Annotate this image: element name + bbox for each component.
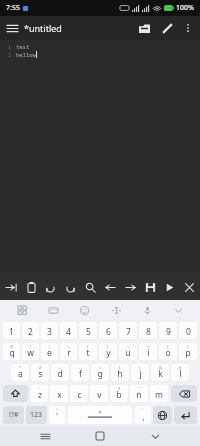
- staticText: s: [38, 368, 43, 380]
- button[interactable]: °: [49, 406, 65, 424]
- button[interactable]: Open file: [132, 16, 156, 40]
- staticText: a: [18, 368, 23, 380]
- button[interactable]: &: [151, 364, 169, 381]
- button[interactable]: Search: [81, 278, 99, 296]
- button[interactable]: Undo: [41, 278, 59, 296]
- button[interactable]: $: [110, 385, 128, 402]
- button[interactable]: 8: [139, 322, 157, 339]
- button[interactable]: -: [71, 364, 89, 381]
- button[interactable]: 5: [79, 322, 97, 339]
- button[interactable]: #: [31, 364, 49, 381]
- button[interactable]: `: [50, 385, 68, 402]
- button[interactable]: Enter: [174, 406, 197, 424]
- button[interactable]: Clipboard: [14, 302, 30, 318]
- staticText: n: [136, 389, 142, 401]
- button[interactable]: ": [130, 385, 148, 402]
- staticText: =: [67, 344, 70, 349]
- button[interactable]: ·: [70, 385, 88, 402]
- staticText: p: [185, 347, 191, 359]
- staticText: 2: [8, 51, 12, 58]
- staticText: °: [56, 407, 58, 412]
- button[interactable]: 1: [3, 322, 20, 339]
- button[interactable]: Change language: [153, 406, 172, 424]
- staticText: !?#: [9, 410, 19, 420]
- staticText: o: [165, 347, 171, 359]
- staticText: 8: [146, 326, 151, 338]
- button[interactable]: [: [79, 343, 97, 360]
- button[interactable]: _: [90, 385, 108, 402]
- button[interactable]: }: [179, 343, 197, 360]
- button[interactable]: Space: [68, 406, 132, 424]
- button[interactable]: Close: [180, 278, 198, 296]
- button[interactable]: 3: [41, 322, 58, 339]
- staticText: ': [56, 411, 58, 423]
- button[interactable]: Keyboard settings: [45, 302, 61, 318]
- staticText: <: [127, 344, 130, 349]
- button[interactable]: Menu: [0, 16, 24, 40]
- button[interactable]: ~: [31, 385, 48, 402]
- button[interactable]: +: [51, 364, 69, 381]
- button[interactable]: >: [139, 343, 157, 360]
- button[interactable]: (: [111, 364, 129, 381]
- button[interactable]: =: [91, 364, 109, 381]
- button[interactable]: <: [119, 343, 137, 360]
- button[interactable]: Run: [160, 278, 178, 296]
- button[interactable]: |: [41, 343, 58, 360]
- staticText: hellow: [16, 51, 36, 58]
- button[interactable]: Voice input: [139, 302, 155, 318]
- staticText: 123: [30, 410, 43, 420]
- button[interactable]: ': [150, 385, 168, 402]
- button[interactable]: !?#: [3, 406, 24, 424]
- staticText: 6: [106, 326, 111, 338]
- staticText: 2: [28, 326, 33, 338]
- button[interactable]: 4: [60, 322, 77, 339]
- button[interactable]: ): [131, 364, 149, 381]
- button[interactable]: \: [22, 343, 39, 360]
- staticText: 7:55: [6, 3, 20, 13]
- staticText: m: [155, 389, 163, 401]
- staticText: *untitled: [24, 22, 62, 34]
- button[interactable]: 123: [26, 406, 47, 424]
- button[interactable]: More options: [178, 18, 198, 38]
- button[interactable]: @: [171, 364, 189, 381]
- button[interactable]: Emoji: [76, 302, 92, 318]
- staticText: #: [39, 365, 42, 370]
- button[interactable]: 6: [99, 322, 117, 339]
- button[interactable]: Text editing: [108, 302, 124, 318]
- staticText: 4: [66, 326, 71, 338]
- button[interactable]: =: [60, 343, 77, 360]
- button[interactable]: 7: [119, 322, 137, 339]
- staticText: ': [159, 386, 160, 391]
- staticText: test: [16, 43, 30, 50]
- button[interactable]: Recents: [35, 426, 55, 446]
- staticText: \: [30, 344, 32, 349]
- button[interactable]: Tab: [2, 278, 20, 296]
- staticText: h: [117, 368, 123, 380]
- button[interactable]: Hide keyboard: [170, 302, 186, 318]
- staticText: b: [116, 389, 122, 401]
- staticText: f: [79, 368, 82, 380]
- button[interactable]: Edit: [156, 17, 178, 39]
- staticText: =: [99, 365, 102, 370]
- button[interactable]: 2: [22, 322, 39, 339]
- button[interactable]: Move left: [101, 278, 119, 296]
- staticText: u: [125, 347, 131, 359]
- button[interactable]: Save: [141, 278, 159, 296]
- button[interactable]: Paste: [22, 278, 40, 296]
- button[interactable]: Shift: [3, 385, 28, 402]
- button[interactable]: Redo: [61, 278, 79, 296]
- button[interactable]: ]: [99, 343, 117, 360]
- button[interactable]: *: [11, 364, 29, 381]
- button[interactable]: Home: [90, 426, 110, 446]
- button[interactable]: %: [3, 343, 20, 360]
- staticText: %: [10, 344, 14, 349]
- button[interactable]: {: [159, 343, 177, 360]
- button[interactable]: Move right: [121, 278, 139, 296]
- button[interactable]: Backspace: [171, 385, 197, 402]
- button[interactable]: 9: [159, 322, 177, 339]
- staticText: 100%: [176, 3, 194, 13]
- staticText: 5: [86, 326, 91, 338]
- button[interactable]: 0: [179, 322, 197, 339]
- button[interactable]: Back: [145, 426, 165, 446]
- button[interactable]: ': [135, 406, 151, 424]
